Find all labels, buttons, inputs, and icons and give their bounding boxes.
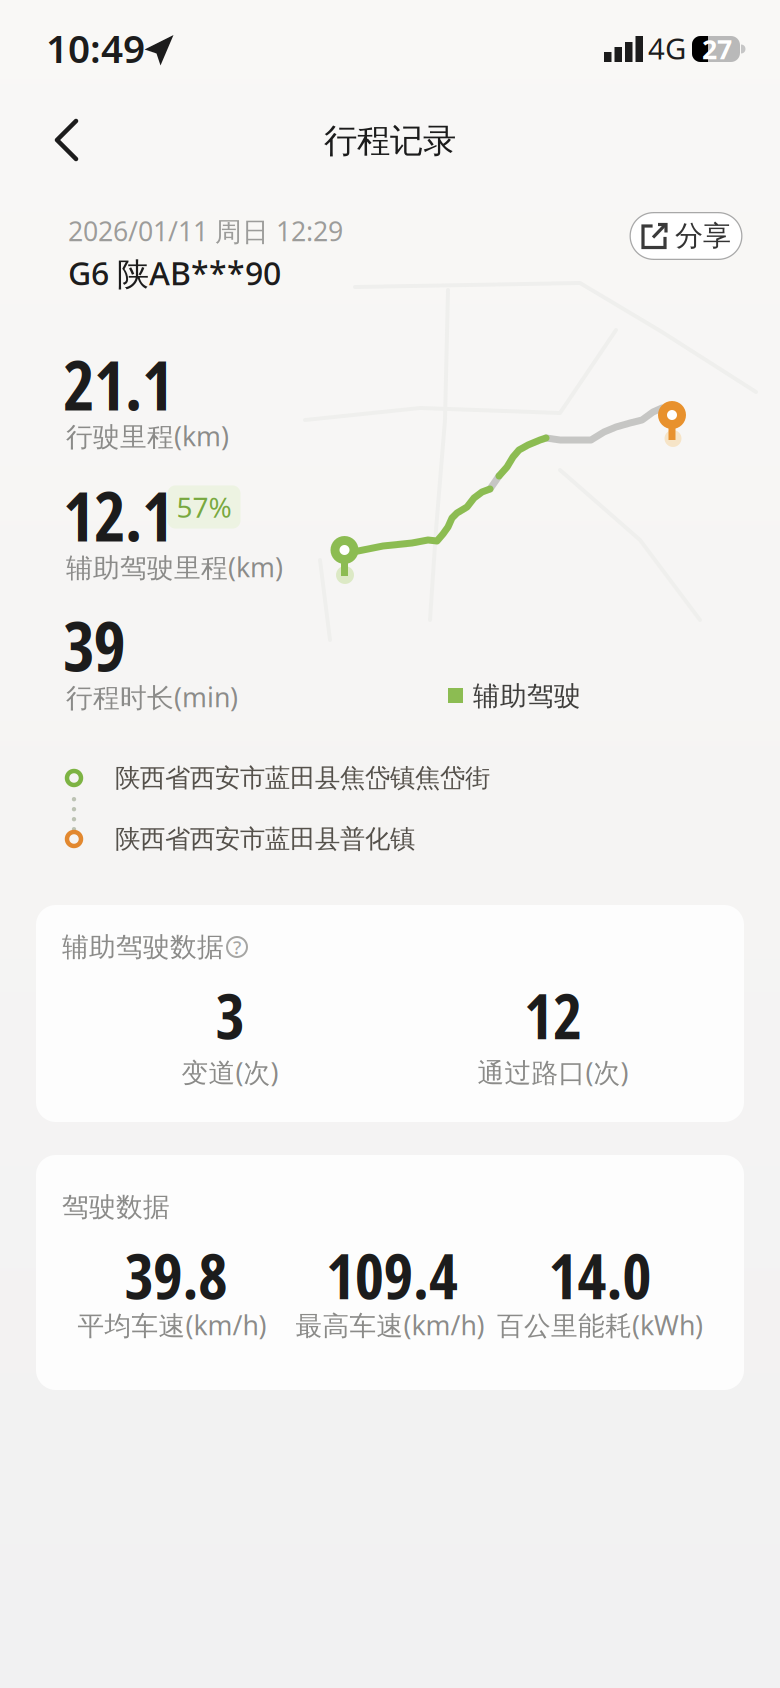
staticText: 57% bbox=[176, 488, 231, 526]
staticText: 行驶里程(km) bbox=[66, 418, 229, 454]
staticText: 辅助驾驶数据 bbox=[62, 931, 224, 963]
staticText: ? bbox=[233, 935, 241, 959]
staticText: 39 bbox=[63, 599, 125, 691]
staticText: 通过路口(次) bbox=[477, 1054, 628, 1090]
staticText: 14.0 bbox=[548, 1232, 651, 1318]
staticText: 陕西省西安市蓝田县普化镇 bbox=[115, 823, 415, 854]
button[interactable]: 返回 bbox=[36, 110, 96, 170]
staticText: 分享 bbox=[675, 219, 731, 253]
staticText: 12.1 bbox=[63, 469, 173, 561]
staticText: G6 陕AB***90 bbox=[68, 252, 281, 294]
button[interactable]: 帮助 bbox=[223, 933, 251, 961]
staticText: 27 bbox=[702, 31, 732, 67]
staticText: 109.4 bbox=[326, 1232, 458, 1318]
staticText: 行程时长(min) bbox=[66, 679, 238, 715]
staticText: 变道(次) bbox=[181, 1054, 278, 1090]
staticText: 驾驶数据 bbox=[62, 1191, 170, 1223]
staticText: 平均车速(km/h) bbox=[77, 1307, 266, 1343]
staticText: 最高车速(km/h) bbox=[295, 1307, 484, 1343]
staticText: 辅助驾驶 bbox=[473, 680, 581, 712]
staticText: 39.8 bbox=[124, 1232, 227, 1318]
staticText: 10:49 bbox=[46, 22, 145, 74]
staticText: 辅助驾驶里程(km) bbox=[66, 549, 283, 585]
staticText: 行程记录 bbox=[324, 120, 456, 161]
staticText: 百公里能耗(kWh) bbox=[497, 1307, 703, 1343]
staticText: 陕西省西安市蓝田县焦岱镇焦岱街 bbox=[115, 762, 490, 793]
button[interactable]: 分享 bbox=[629, 212, 742, 260]
staticText: 2026/01/11 周日 12:29 bbox=[68, 213, 343, 249]
staticText: 12 bbox=[524, 972, 582, 1058]
staticText: 4G bbox=[648, 28, 686, 67]
staticText: 21.1 bbox=[63, 338, 173, 430]
staticText: 3 bbox=[215, 972, 244, 1058]
